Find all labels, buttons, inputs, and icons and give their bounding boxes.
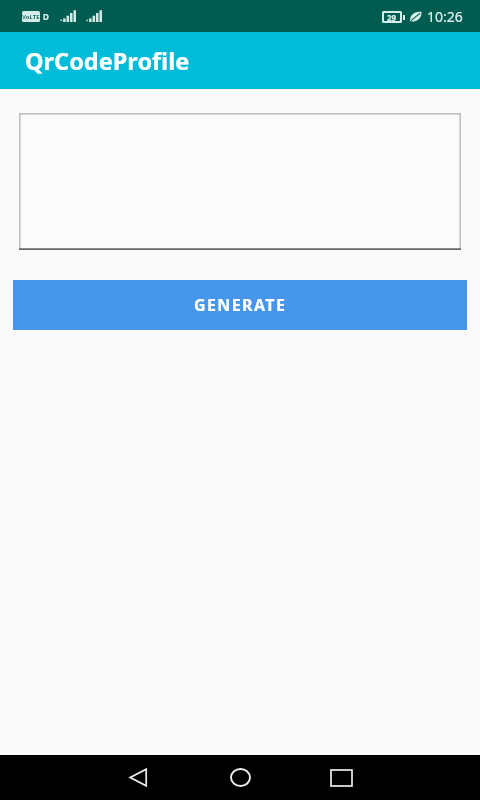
staticText: D: [43, 11, 49, 22]
staticText: VoLTE: [22, 13, 40, 21]
staticText: 29: [387, 12, 397, 23]
button[interactable]: Recents: [317, 755, 365, 800]
staticText: 10:26: [427, 7, 463, 26]
button[interactable]: Home: [216, 755, 264, 800]
button[interactable]: [19, 113, 461, 250]
staticText: GENERATE: [194, 294, 287, 316]
button[interactable]: GENERATE: [13, 280, 467, 330]
staticText: QrCodeProfile: [25, 45, 190, 77]
button[interactable]: Back: [115, 755, 163, 800]
